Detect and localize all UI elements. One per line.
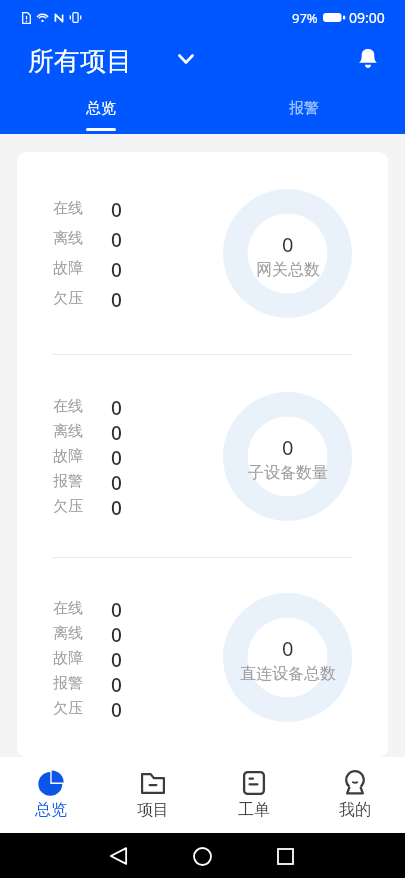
staticText: 0	[111, 197, 122, 219]
staticText: 0	[111, 257, 122, 279]
staticText: 报警	[53, 472, 83, 491]
button[interactable]: 我的	[304, 757, 405, 833]
button[interactable]: Back	[98, 836, 138, 876]
staticText: 欠压	[53, 699, 83, 718]
staticText: 0	[111, 672, 122, 694]
staticText: 0	[111, 647, 122, 669]
staticText: 0	[111, 287, 122, 309]
staticText: 0	[111, 420, 122, 442]
staticText: 0	[111, 227, 122, 249]
staticText: 0	[282, 635, 294, 662]
button[interactable]: Recents	[265, 836, 305, 876]
staticText: 网关总数	[256, 260, 320, 280]
staticText: 0	[282, 434, 294, 461]
staticText: 离线	[53, 624, 83, 643]
staticText: 工单	[238, 800, 270, 820]
staticText: 0	[111, 395, 122, 417]
staticText: 离线	[53, 422, 83, 441]
button[interactable]: 项目	[102, 757, 203, 833]
staticText: 总览	[35, 800, 67, 820]
button[interactable]: 报警	[202, 96, 405, 134]
staticText: 我的	[339, 800, 371, 820]
staticText: 在线	[53, 599, 83, 618]
staticText: 欠压	[53, 289, 83, 308]
staticText: 报警	[53, 674, 83, 693]
staticText: 在线	[53, 397, 83, 416]
staticText: 97%	[292, 9, 318, 27]
staticText: 0	[111, 445, 122, 467]
staticText: 所有项目	[28, 45, 132, 78]
staticText: 直连设备总数	[240, 664, 336, 684]
button[interactable]: 工单	[203, 757, 304, 833]
staticText: 0	[111, 495, 122, 517]
staticText: 在线	[53, 199, 83, 218]
staticText: 0	[111, 597, 122, 619]
staticText: 0	[111, 470, 122, 492]
button[interactable]: 所有项目	[0, 49, 204, 82]
staticText: 09:00	[349, 8, 385, 27]
staticText: 0	[111, 697, 122, 719]
button[interactable]: Home	[182, 836, 222, 876]
staticText: 离线	[53, 229, 83, 248]
button[interactable]: 总览	[0, 757, 102, 833]
button[interactable]: Notifications	[348, 37, 388, 77]
staticText: 子设备数量	[248, 463, 328, 483]
staticText: 故障	[53, 649, 83, 668]
staticText: 总览	[86, 99, 116, 118]
staticText: 故障	[53, 447, 83, 466]
staticText: 0	[111, 622, 122, 644]
staticText: 项目	[137, 800, 169, 820]
staticText: 欠压	[53, 497, 83, 516]
staticText: 故障	[53, 259, 83, 278]
staticText: 报警	[289, 99, 319, 118]
button[interactable]: 总览	[0, 96, 202, 134]
staticText: 0	[282, 231, 294, 258]
